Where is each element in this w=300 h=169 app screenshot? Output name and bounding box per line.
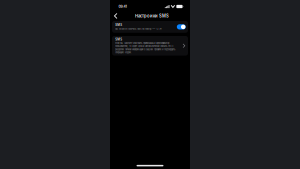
button[interactable]: Back	[110, 12, 121, 20]
staticText: SMS	[115, 38, 122, 41]
button[interactable]: SMS	[112, 21, 188, 33]
staticText: Настройки SMS	[135, 13, 169, 18]
staticText: Если вы захотите изменить привязанный ид…	[115, 42, 175, 54]
button[interactable]: SMS	[112, 36, 188, 56]
staticText: 09:41	[118, 4, 126, 9]
staticText: Вы можете получать SMS на номер *** 12 3…	[115, 28, 161, 30]
staticText: SMS	[115, 23, 122, 27]
